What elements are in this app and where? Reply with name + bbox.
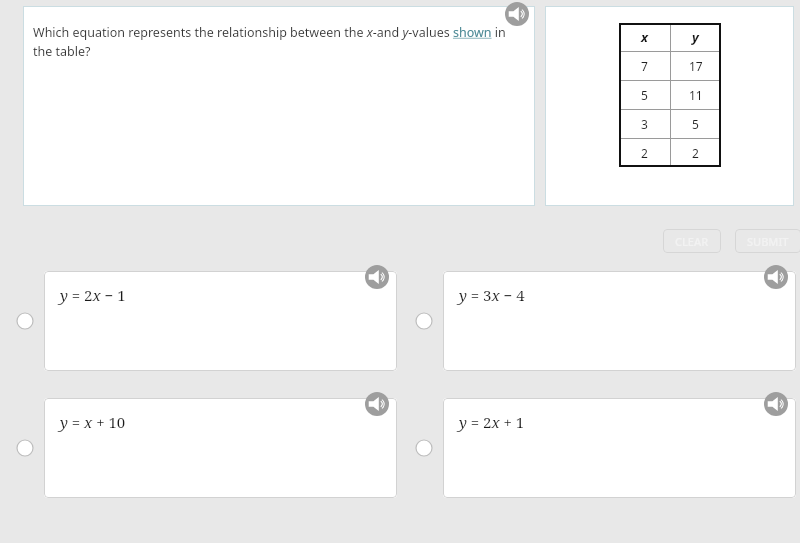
staticText: 2: [641, 145, 648, 161]
staticText: x: [641, 28, 648, 46]
staticText: 5: [641, 87, 648, 103]
staticText: 17: [689, 58, 703, 74]
button[interactable]: Select answer: [415, 439, 433, 457]
staticText: 7: [641, 58, 648, 74]
staticText: 3: [641, 116, 648, 132]
button[interactable]: Select answer: [415, 312, 433, 330]
staticText: 2: [692, 145, 699, 161]
staticText: y: [692, 28, 699, 46]
button[interactable]: Read answer aloud: [764, 265, 788, 289]
button[interactable]: Read answer aloud: [365, 265, 389, 289]
button[interactable]: Select answer: [16, 439, 34, 457]
staticText: SUBMIT: [747, 234, 789, 249]
button[interactable]: Select answer: [16, 312, 34, 330]
button[interactable]: y = 2x − 1: [44, 271, 397, 371]
button[interactable]: Read answer aloud: [764, 392, 788, 416]
button[interactable]: y = 3x − 4: [443, 271, 796, 371]
button[interactable]: SUBMIT: [735, 229, 800, 253]
button[interactable]: Read answer aloud: [365, 392, 389, 416]
staticText: 11: [689, 87, 703, 103]
staticText: y = x + 10: [60, 412, 126, 432]
button[interactable]: Read question aloud: [505, 2, 529, 26]
button[interactable]: y = 2x + 1: [443, 398, 796, 498]
button[interactable]: y = x + 10: [44, 398, 397, 498]
staticText: CLEAR: [675, 234, 709, 249]
staticText: y = 3x − 4: [459, 285, 525, 305]
button[interactable]: CLEAR: [663, 229, 721, 253]
staticText: y = 2x − 1: [60, 285, 126, 305]
staticText: 5: [692, 116, 699, 132]
staticText: y = 2x + 1: [459, 412, 525, 432]
staticText: Which equation represents the relationsh…: [33, 24, 521, 60]
